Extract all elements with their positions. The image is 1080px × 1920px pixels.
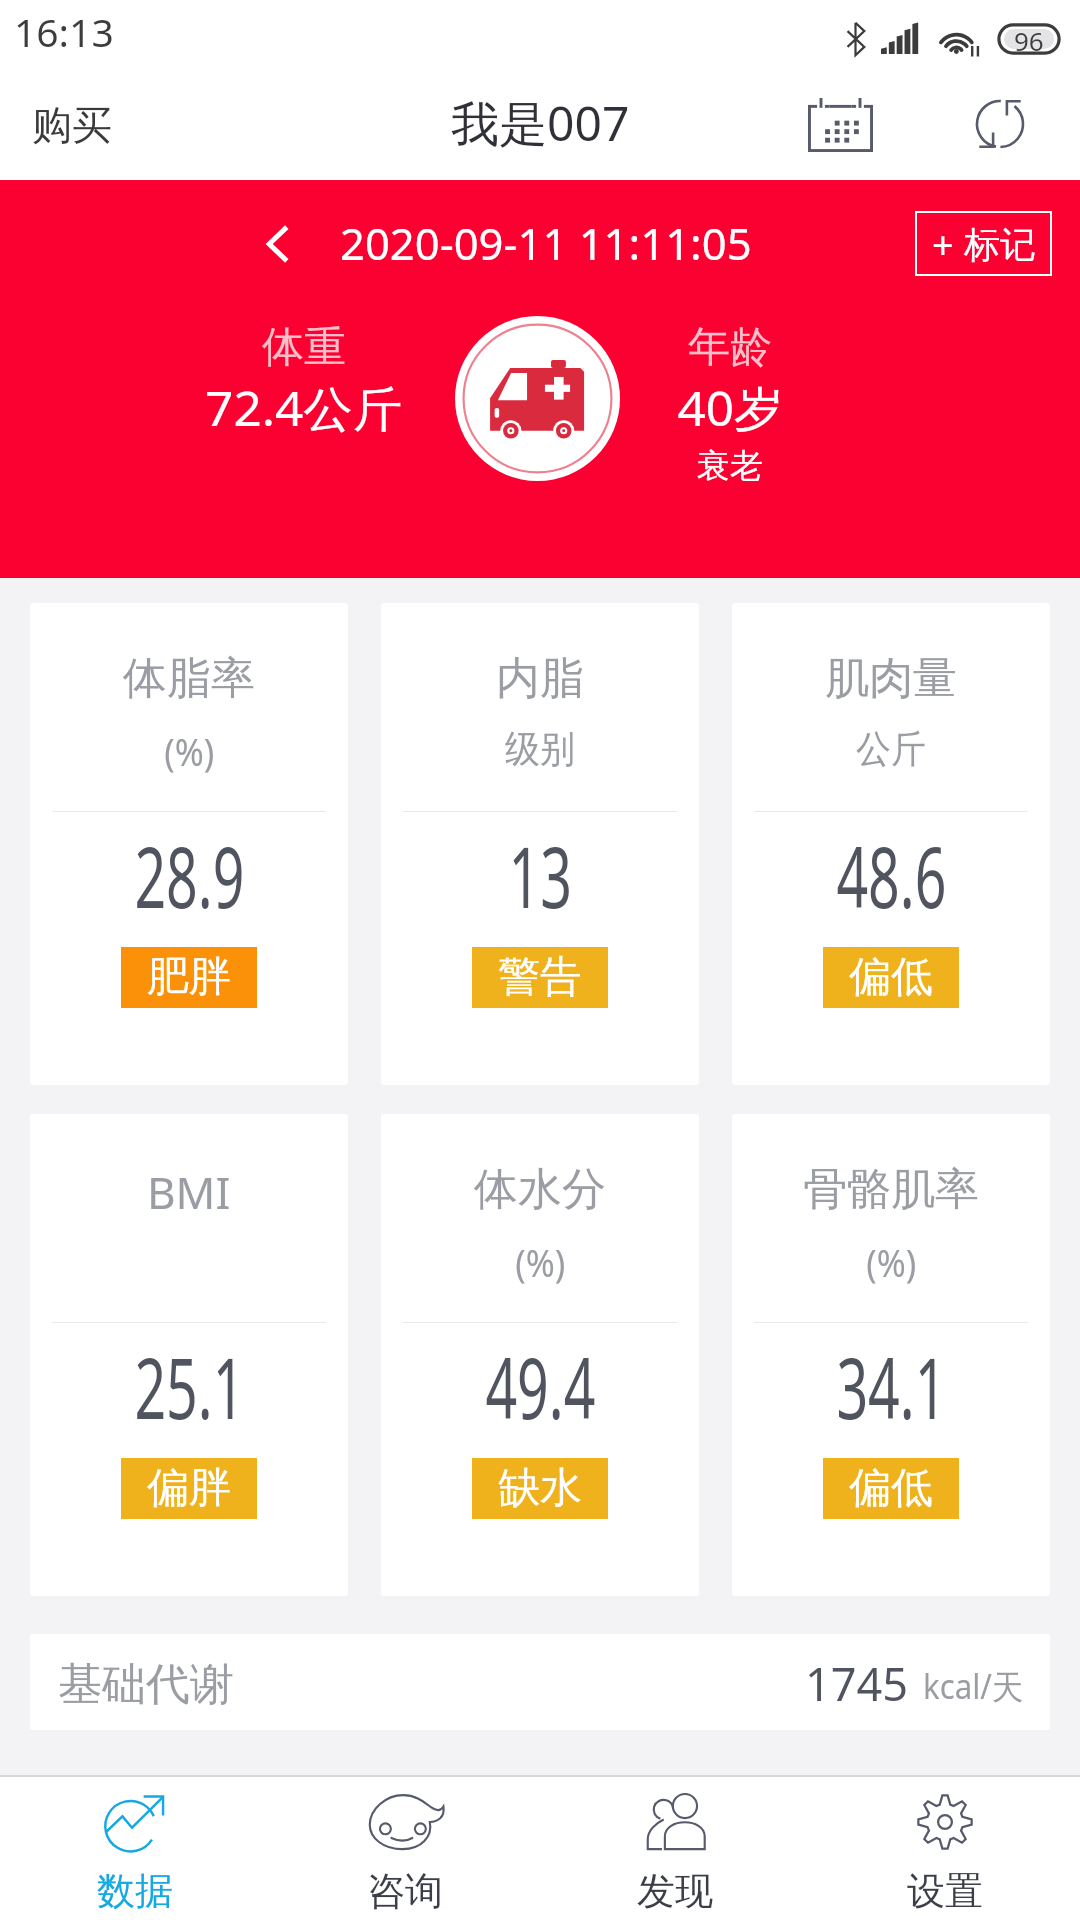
staticText: 设置 — [907, 1867, 983, 1915]
button[interactable]: 设置 — [810, 1778, 1080, 1919]
staticText: 年龄 — [688, 321, 772, 374]
staticText: 13 — [508, 818, 572, 932]
button[interactable]: BMI — [30, 1114, 348, 1596]
staticText: 数据 — [97, 1867, 173, 1915]
button[interactable]: 骨骼肌率 — [732, 1114, 1050, 1596]
staticText: 40岁 — [677, 375, 784, 441]
button[interactable]: 发现 — [540, 1778, 810, 1919]
button[interactable]: 体水分 — [381, 1114, 699, 1596]
button[interactable]: 咨询 — [270, 1778, 540, 1919]
button[interactable]: 内脂 — [381, 603, 699, 1085]
staticText: 偏低 — [849, 1462, 933, 1515]
staticText: 公斤 — [856, 725, 926, 773]
staticText: 34.1 — [836, 1329, 947, 1443]
staticText: 肌肉量 — [825, 651, 957, 706]
staticText: 我是007 — [451, 90, 630, 156]
button[interactable]: 购买 — [0, 82, 144, 168]
button[interactable]: 数据 — [0, 1778, 270, 1919]
button[interactable]: Calendar — [788, 78, 893, 180]
staticText: (%) — [164, 725, 215, 777]
staticText: 16:13 — [14, 5, 114, 58]
staticText: 偏低 — [849, 951, 933, 1004]
button[interactable]: 肌肉量 — [732, 603, 1050, 1085]
staticText: (%) — [515, 1236, 566, 1288]
staticText: 肥胖 — [147, 951, 231, 1004]
staticText: 咨询 — [367, 1867, 443, 1915]
staticText: 标记 — [964, 222, 1036, 267]
staticText: (%) — [866, 1236, 917, 1288]
staticText: 49.4 — [485, 1329, 596, 1443]
staticText: 25.1 — [134, 1329, 245, 1443]
button[interactable]: Refresh — [948, 78, 1052, 180]
staticText: 骨骼肌率 — [803, 1162, 979, 1217]
button[interactable]: 体脂率 — [30, 603, 348, 1085]
staticText: 警告 — [498, 951, 582, 1004]
staticText: 28.9 — [134, 818, 245, 932]
staticText: 发现 — [637, 1867, 713, 1915]
staticText: 基础代谢 — [58, 1657, 234, 1712]
staticText: 2020-09-11 11:11:05 — [340, 213, 752, 273]
button[interactable]: + — [915, 211, 1052, 276]
staticText: 缺水 — [498, 1462, 582, 1515]
staticText: kcal/天 — [923, 1663, 1023, 1709]
staticText: 级别 — [505, 725, 575, 773]
staticText: 体水分 — [474, 1162, 606, 1217]
staticText: 1745 — [805, 1652, 909, 1715]
staticText: 内脂 — [496, 651, 584, 706]
staticText: 体脂率 — [123, 651, 255, 706]
staticText: + — [932, 218, 954, 270]
button[interactable]: 基础代谢 — [30, 1634, 1050, 1730]
staticText: 48.6 — [836, 818, 947, 932]
staticText: 72.4公斤 — [205, 375, 403, 441]
staticText: 购买 — [32, 100, 112, 150]
staticText: BMI — [147, 1162, 231, 1222]
staticText: 96 — [1014, 23, 1044, 55]
button[interactable]: Previous day — [246, 212, 310, 276]
staticText: 体重 — [262, 321, 346, 374]
staticText: 偏胖 — [147, 1462, 231, 1515]
staticText: 衰老 — [697, 445, 763, 487]
